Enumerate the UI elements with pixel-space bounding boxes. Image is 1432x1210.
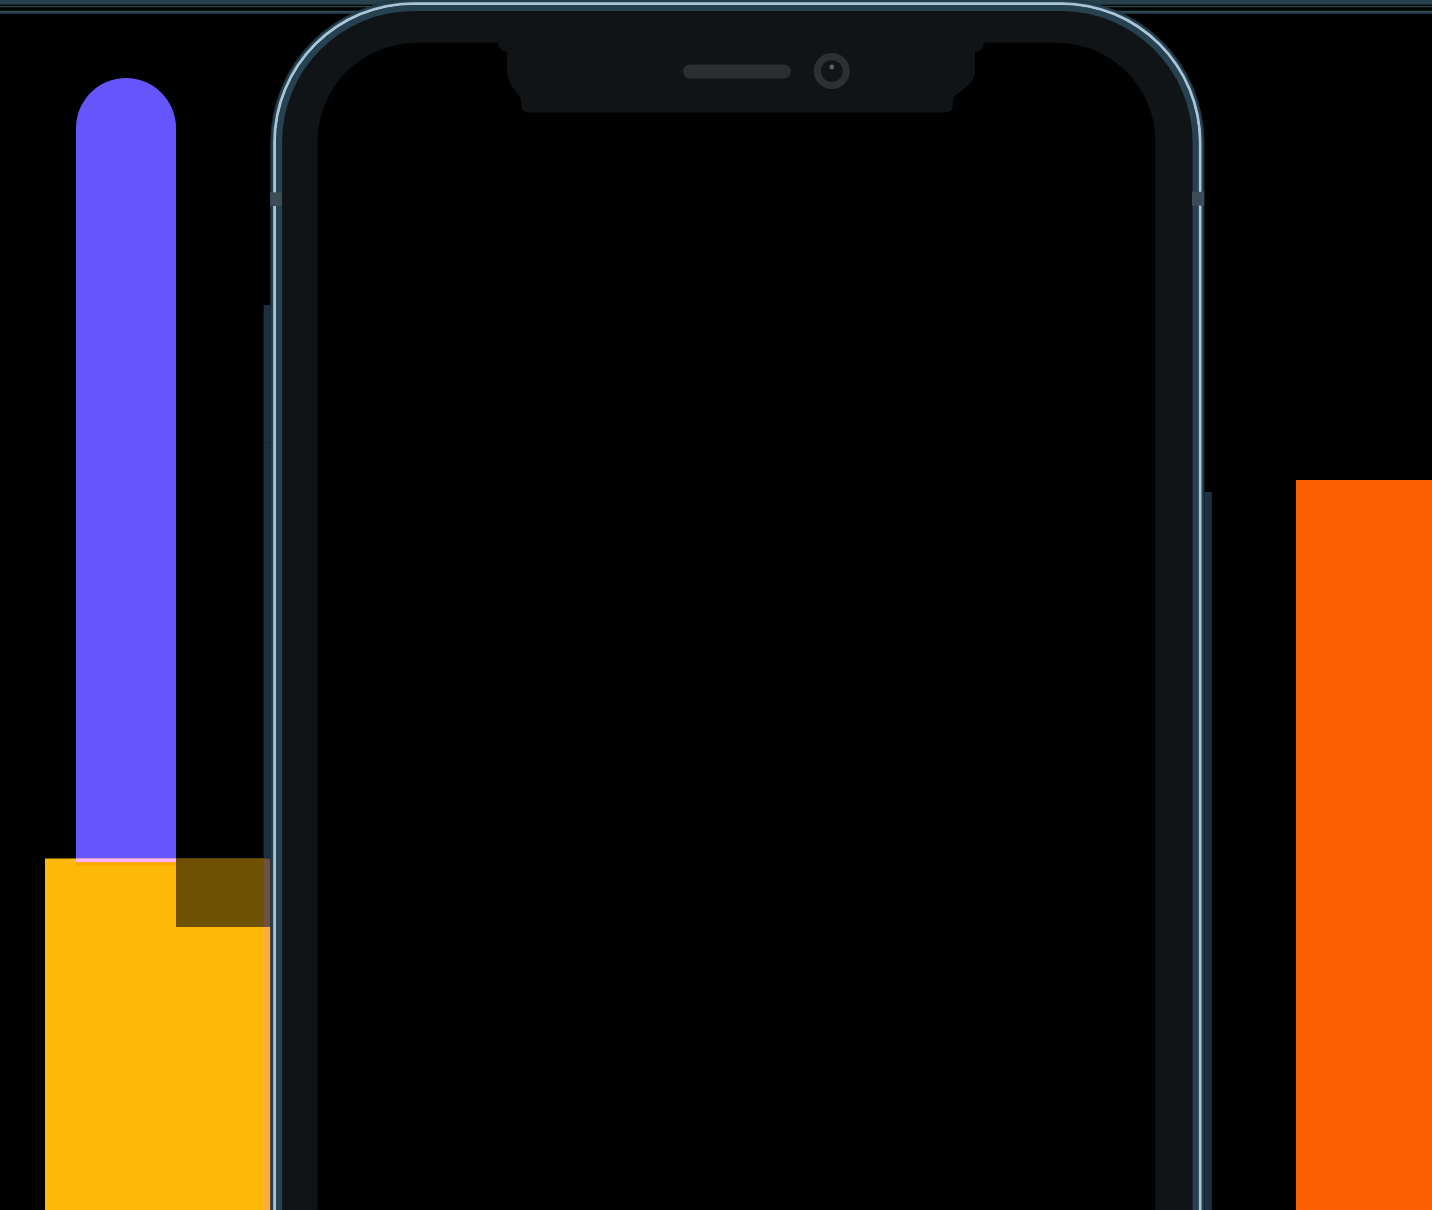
button[interactable]: Phone device mockup: [0, 0, 1432, 1210]
